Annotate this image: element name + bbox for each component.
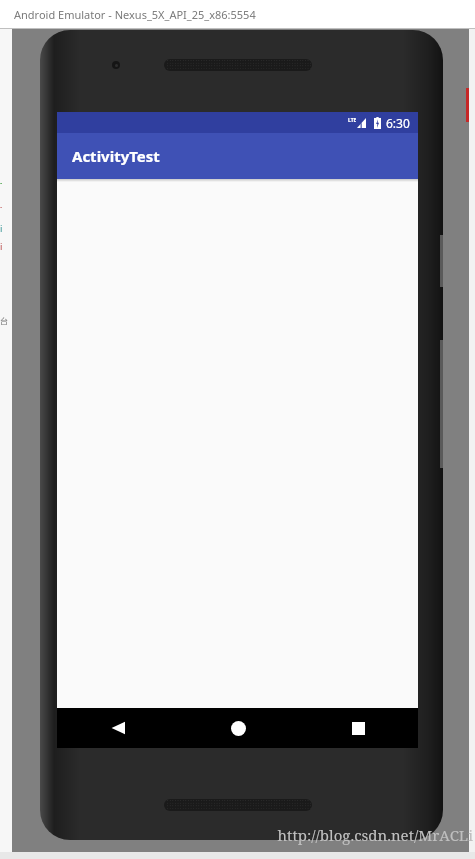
- staticText: i: [0, 222, 3, 234]
- staticText: -: [0, 202, 3, 212]
- staticText: ActivityTest: [72, 146, 160, 166]
- staticText: 台: [0, 316, 8, 326]
- staticText: Android Emulator - Nexus_5X_API_25_x86:5…: [14, 7, 256, 22]
- button[interactable]: ActivityTest: [57, 133, 418, 179]
- staticText: i: [0, 240, 3, 252]
- button[interactable]: Home: [178, 708, 298, 748]
- staticText: LTE: [348, 117, 357, 124]
- staticText: 6:30: [386, 115, 410, 131]
- button[interactable]: Back: [57, 708, 178, 748]
- staticText: -: [0, 178, 3, 188]
- button[interactable]: Recent apps: [298, 708, 418, 748]
- staticText: http://blog.csdn.net/MrACLi: [277, 825, 473, 845]
